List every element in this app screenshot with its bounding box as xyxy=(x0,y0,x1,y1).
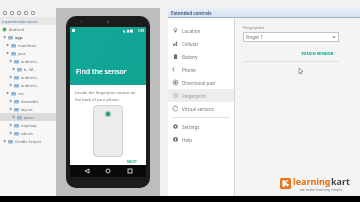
staticText: java xyxy=(18,51,26,56)
staticText: Battery xyxy=(182,54,198,60)
staticText: Directional pad xyxy=(182,80,215,86)
button[interactable] xyxy=(24,11,28,15)
staticText: Cellular xyxy=(182,41,199,47)
staticText: activ… xyxy=(24,115,36,120)
button[interactable]: android… xyxy=(0,81,56,89)
staticText: Fingerprint xyxy=(243,25,265,30)
staticText: drawable xyxy=(21,99,39,104)
staticText: learning xyxy=(293,175,331,187)
staticText: Phone xyxy=(182,67,196,73)
button[interactable]: Cellular xyxy=(168,37,234,50)
button[interactable]: Android xyxy=(0,25,56,33)
button[interactable]: values xyxy=(0,129,56,137)
button[interactable]: layout xyxy=(0,105,56,113)
staticText: values xyxy=(21,131,33,136)
button[interactable]: app xyxy=(0,33,56,41)
staticText: app xyxy=(15,35,23,40)
staticText: 1:19 xyxy=(138,29,144,33)
staticText: layout xyxy=(21,107,33,112)
button[interactable]: Finger 1 xyxy=(243,32,339,42)
button[interactable]: TOUCH SENSOR xyxy=(296,48,339,60)
staticText: NEXT xyxy=(127,159,138,163)
button[interactable]: res xyxy=(0,89,56,97)
staticText: Find the sensor xyxy=(76,67,127,77)
staticText: Android xyxy=(9,27,24,32)
button[interactable]: mipmap xyxy=(0,121,56,129)
staticText: Gradle Scripts xyxy=(15,139,42,144)
staticText: mipmap xyxy=(21,123,37,128)
staticText: Help xyxy=(182,137,193,143)
button[interactable]: Directional pad xyxy=(168,76,234,89)
button[interactable]: java xyxy=(0,49,56,57)
button[interactable] xyxy=(17,11,21,15)
staticText: Location xyxy=(182,28,201,34)
staticText: we make learning simple xyxy=(300,187,343,192)
button[interactable]: Home xyxy=(103,166,113,176)
staticText: TOUCH SENSOR xyxy=(301,51,334,57)
button[interactable]: Virtual sensors xyxy=(168,102,234,115)
button[interactable]: Settings xyxy=(168,120,234,133)
button[interactable]: manifests xyxy=(0,41,56,49)
button[interactable] xyxy=(3,11,7,15)
staticText: b…M… xyxy=(24,67,37,72)
button[interactable]: android… xyxy=(0,73,56,81)
staticText: android… xyxy=(21,83,39,88)
button[interactable]: Gradle Scripts xyxy=(0,137,56,145)
button[interactable]: Location xyxy=(168,24,234,37)
staticText: Settings xyxy=(182,124,200,130)
button[interactable]: activ… xyxy=(0,113,56,121)
button[interactable]: myandroidprojects xyxy=(0,17,56,25)
staticText: res xyxy=(18,91,24,96)
button[interactable]: NEXT xyxy=(124,157,141,165)
staticText: Fingerprint xyxy=(182,93,207,99)
staticText: myandroidprojects xyxy=(2,19,38,24)
staticText: Locate the fingerprint sensor on the bac… xyxy=(75,90,141,102)
staticText: Virtual sensors xyxy=(182,106,215,112)
staticText: manifests xyxy=(18,43,37,48)
button[interactable]: Help xyxy=(168,133,234,146)
button[interactable]: Back xyxy=(82,166,92,176)
staticText: android… xyxy=(21,59,39,64)
staticText: android… xyxy=(21,75,39,80)
staticText: Finger 1 xyxy=(246,34,264,40)
staticText: Extended controls xyxy=(171,10,212,16)
button[interactable]: drawable xyxy=(0,97,56,105)
button[interactable]: b…M… xyxy=(0,65,56,73)
button[interactable] xyxy=(31,11,35,15)
button[interactable] xyxy=(10,11,14,15)
button[interactable]: Recents xyxy=(125,166,135,176)
button[interactable]: Battery xyxy=(168,50,234,63)
staticText: kart xyxy=(331,175,350,187)
button[interactable]: Phone xyxy=(168,63,234,76)
button[interactable]: android… xyxy=(0,57,56,65)
button[interactable]: Fingerprint xyxy=(168,89,234,102)
